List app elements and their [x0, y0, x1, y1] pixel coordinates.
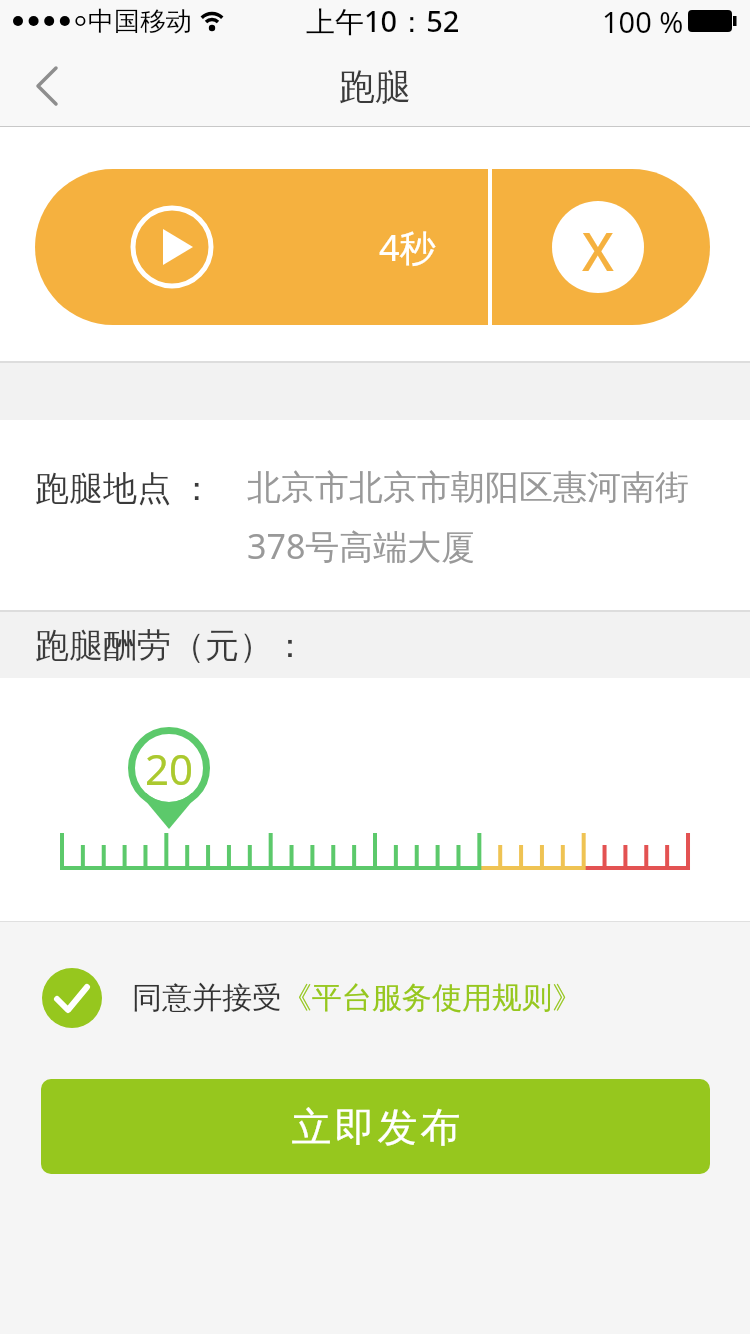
staticText: 《平台服务使用规则》 [282, 979, 582, 1017]
staticText: 上午10：52 [306, 1, 460, 41]
staticText: 4秒 [379, 223, 436, 272]
staticText: 跑腿地点 ： [35, 464, 214, 510]
button[interactable]: 《平台服务使用规则》 [282, 975, 582, 1021]
staticText: 20 [145, 740, 194, 796]
staticText: 同意并接受 [132, 979, 282, 1017]
staticText: 378号高端大厦 [247, 523, 476, 569]
button[interactable]: 立即发布 [41, 1079, 710, 1174]
button[interactable] [10, 55, 80, 117]
staticText: 跑腿 [339, 64, 411, 109]
staticText: 100 % [602, 2, 684, 41]
staticText: 跑腿酬劳（元）： [35, 624, 307, 667]
button[interactable] [42, 968, 102, 1028]
staticText: 北京市北京市朝阳区惠河南街 [247, 466, 689, 509]
staticText: 中国移动 [88, 5, 192, 38]
staticText: 立即发布 [290, 1102, 462, 1152]
button[interactable]: 4秒 [35, 169, 710, 325]
staticText: X [582, 215, 614, 279]
